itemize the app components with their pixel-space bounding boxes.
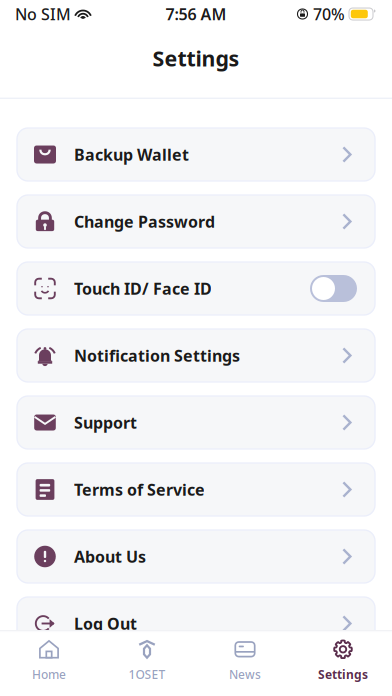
staticText: Backup Wallet xyxy=(74,144,189,165)
button[interactable]: Log Out xyxy=(17,597,375,650)
button[interactable]: Touch ID/ Face ID xyxy=(17,262,375,315)
staticText: About Us xyxy=(74,546,146,567)
staticText: News xyxy=(229,666,261,682)
staticText: Log Out xyxy=(74,613,137,634)
button[interactable]: News xyxy=(196,632,294,696)
button[interactable]: 1OSET xyxy=(98,632,196,696)
staticText: 1OSET xyxy=(128,666,165,682)
staticText: No SIM xyxy=(15,3,71,25)
staticText: 70% xyxy=(313,3,345,25)
staticText: Home xyxy=(32,666,66,682)
staticText: Terms of Service xyxy=(74,479,205,500)
staticText: 7:56 AM xyxy=(165,3,226,25)
button[interactable]: Settings xyxy=(294,632,392,696)
staticText: Notification Settings xyxy=(74,345,240,366)
button[interactable]: Backup Wallet xyxy=(17,128,375,181)
button[interactable]: Support xyxy=(17,396,375,449)
button[interactable]: Notification Settings xyxy=(17,329,375,382)
button[interactable]: Home xyxy=(0,632,98,696)
staticText: Settings xyxy=(152,44,239,72)
staticText: Settings xyxy=(318,666,368,682)
staticText: Change Password xyxy=(74,211,215,232)
button[interactable]: Change Password xyxy=(17,195,375,248)
staticText: Support xyxy=(74,412,137,433)
staticText: Touch ID/ Face ID xyxy=(74,278,212,299)
button[interactable]: Terms of Service xyxy=(17,463,375,516)
button[interactable]: About Us xyxy=(17,530,375,583)
